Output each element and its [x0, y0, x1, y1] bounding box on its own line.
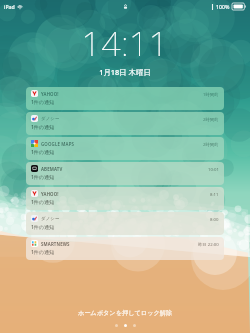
staticText: 1件の通知: [31, 249, 54, 256]
staticText: 14:11: [0, 20, 250, 66]
staticText: 2時間前: [203, 116, 219, 122]
staticText: YAHOO!: [41, 91, 59, 97]
button[interactable]: YAHOO!: [26, 187, 224, 210]
staticText: 1件の通知: [31, 199, 54, 206]
button[interactable]: ABEMATV: [26, 162, 224, 185]
button[interactable]: GOOGLE MAPS: [26, 137, 224, 160]
staticText: ダノシー: [41, 216, 60, 222]
staticText: 1月18日 木曜日: [0, 67, 250, 77]
button[interactable]: Page 2: [124, 324, 127, 327]
staticText: 1時間前: [203, 91, 219, 97]
staticText: 8:00: [210, 216, 219, 222]
button[interactable]: Page 1: [115, 324, 118, 327]
staticText: 1件の通知: [31, 124, 54, 131]
staticText: YAHOO!: [41, 191, 59, 197]
staticText: 1件の通知: [31, 99, 54, 106]
staticText: 1件の通知: [31, 174, 54, 181]
button[interactable]: ダノシー: [26, 112, 224, 135]
staticText: ダノシー: [41, 116, 60, 122]
staticText: ホームボタンを押してロック解除: [0, 309, 250, 317]
staticText: ABEMATV: [41, 166, 63, 172]
button[interactable]: Page 3: [133, 324, 136, 327]
button[interactable]: YAHOO!: [26, 87, 224, 110]
button[interactable]: ダノシー: [26, 212, 224, 235]
staticText: 100%: [216, 3, 230, 10]
staticText: SMARTNEWS: [41, 241, 70, 247]
staticText: 2時間前: [203, 141, 219, 147]
staticText: iPad: [4, 3, 15, 10]
staticText: 1件の通知: [31, 149, 54, 156]
staticText: 昨日 22:00: [198, 241, 219, 247]
staticText: GOOGLE MAPS: [41, 141, 75, 147]
staticText: 8:11: [210, 191, 219, 197]
button[interactable]: SMARTNEWS: [26, 237, 224, 260]
staticText: 1件の通知: [31, 224, 54, 231]
staticText: 10:01: [208, 166, 219, 172]
